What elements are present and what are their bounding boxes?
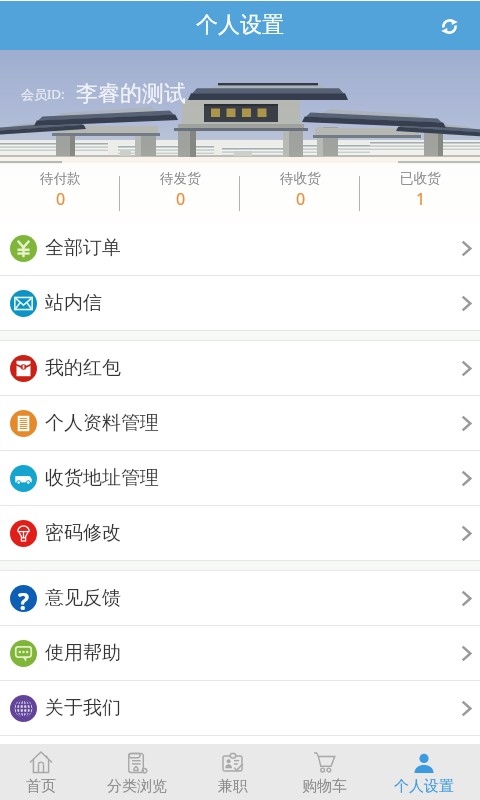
button[interactable]: 使用帮助 [0, 626, 480, 680]
button[interactable]: 分类浏览 [89, 744, 185, 800]
staticText: 0 [296, 188, 306, 210]
button[interactable]: 首页 [0, 744, 89, 800]
staticText: 1 [416, 188, 426, 210]
staticText: 个人资料管理 [45, 411, 159, 435]
button[interactable]: 个人资料管理 [0, 396, 480, 450]
staticText: 李睿的测试 [76, 80, 186, 108]
staticText: 个人设置 [196, 11, 284, 39]
staticText: 意见反馈 [45, 586, 121, 610]
staticText: 已收货 [400, 170, 441, 187]
staticText: 待收货 [280, 170, 321, 187]
button[interactable]: 待收货 [240, 163, 360, 221]
staticText: ? [18, 585, 29, 612]
button[interactable]: 密码修改 [0, 506, 480, 560]
button[interactable]: Refresh [430, 7, 468, 45]
staticText: 首页 [26, 777, 56, 796]
staticText: 0 [176, 188, 186, 210]
button[interactable]: 待付款 [0, 163, 120, 221]
staticText: 站内信 [45, 291, 102, 315]
staticText: 分类浏览 [107, 777, 167, 796]
button[interactable]: 我的红包 [0, 341, 480, 395]
button[interactable]: 关于我们 [0, 681, 480, 735]
button[interactable]: 收货地址管理 [0, 451, 480, 505]
staticText: 兼职 [218, 777, 248, 796]
button[interactable]: 购物车 [276, 744, 372, 800]
staticText: 我的红包 [45, 356, 121, 380]
staticText: 密码修改 [45, 521, 121, 545]
staticText: 收货地址管理 [45, 466, 159, 490]
button[interactable]: 站内信 [0, 276, 480, 330]
button[interactable]: ? [0, 571, 480, 625]
button[interactable]: 已收货 [360, 163, 480, 221]
staticText: 使用帮助 [45, 641, 121, 665]
button[interactable]: 待发货 [120, 163, 240, 221]
button[interactable]: 全部订单 [0, 221, 480, 275]
staticText: 待付款 [40, 170, 81, 187]
button[interactable]: 兼职 [185, 744, 281, 800]
staticText: 全部订单 [45, 236, 121, 260]
staticText: 会员ID: [21, 85, 65, 103]
staticText: 0 [56, 188, 66, 210]
button[interactable]: 个人设置 [376, 744, 472, 800]
staticText: 待发货 [160, 170, 201, 187]
staticText: 个人设置 [394, 777, 454, 796]
staticText: 关于我们 [45, 696, 121, 720]
staticText: 购物车 [302, 777, 347, 796]
